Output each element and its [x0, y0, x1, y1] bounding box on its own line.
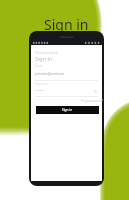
staticText: johndoe@mail.com: [35, 72, 64, 76]
staticText: Sign in: [62, 108, 73, 112]
staticText: Sign in: [44, 15, 89, 34]
staticText: Welcome back: [35, 50, 58, 55]
button[interactable]: Forgot password?: [81, 99, 103, 103]
staticText: Sign in: [35, 55, 53, 62]
button[interactable]: Sign in: [36, 106, 99, 114]
staticText: ••••••••: [35, 89, 45, 93]
button[interactable]: Show password: [93, 89, 98, 94]
staticText: Email: [35, 64, 43, 68]
staticText: Forgot password?: [81, 99, 103, 103]
staticText: Password: [35, 82, 48, 86]
